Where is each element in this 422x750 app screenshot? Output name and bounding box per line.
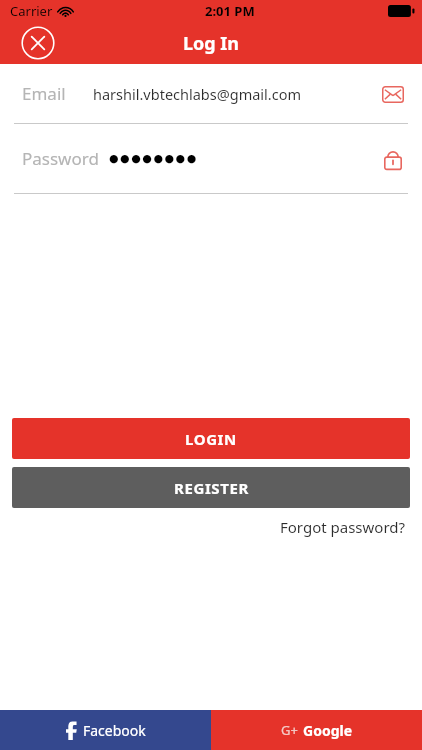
staticText: Password bbox=[22, 147, 99, 170]
staticText: ●●●●●●●● bbox=[109, 152, 198, 165]
button[interactable]: Email bbox=[378, 79, 408, 109]
staticText: Google bbox=[303, 721, 353, 740]
button[interactable]: Show password bbox=[378, 144, 408, 174]
staticText: 2:01 PM bbox=[205, 2, 255, 20]
staticText: Carrier bbox=[10, 2, 53, 20]
staticText: REGISTER bbox=[174, 478, 249, 498]
button[interactable]: Facebook bbox=[0, 710, 211, 750]
button[interactable]: Close bbox=[20, 25, 56, 61]
staticText: G+ bbox=[281, 721, 298, 739]
staticText: Facebook bbox=[83, 721, 146, 740]
button[interactable]: G+ bbox=[211, 710, 422, 750]
button[interactable]: Password bbox=[0, 124, 422, 193]
button[interactable]: REGISTER bbox=[12, 467, 410, 508]
staticText: LOGIN bbox=[185, 429, 237, 449]
button[interactable]: LOGIN bbox=[12, 418, 410, 459]
staticText: Email bbox=[22, 82, 66, 105]
staticText: Log In bbox=[183, 31, 240, 56]
staticText: harshil.vbtechlabs@gmail.com bbox=[93, 84, 302, 104]
staticText: Forgot password? bbox=[280, 517, 406, 537]
button[interactable]: Forgot password? bbox=[280, 517, 406, 537]
button[interactable]: Email bbox=[0, 64, 422, 123]
